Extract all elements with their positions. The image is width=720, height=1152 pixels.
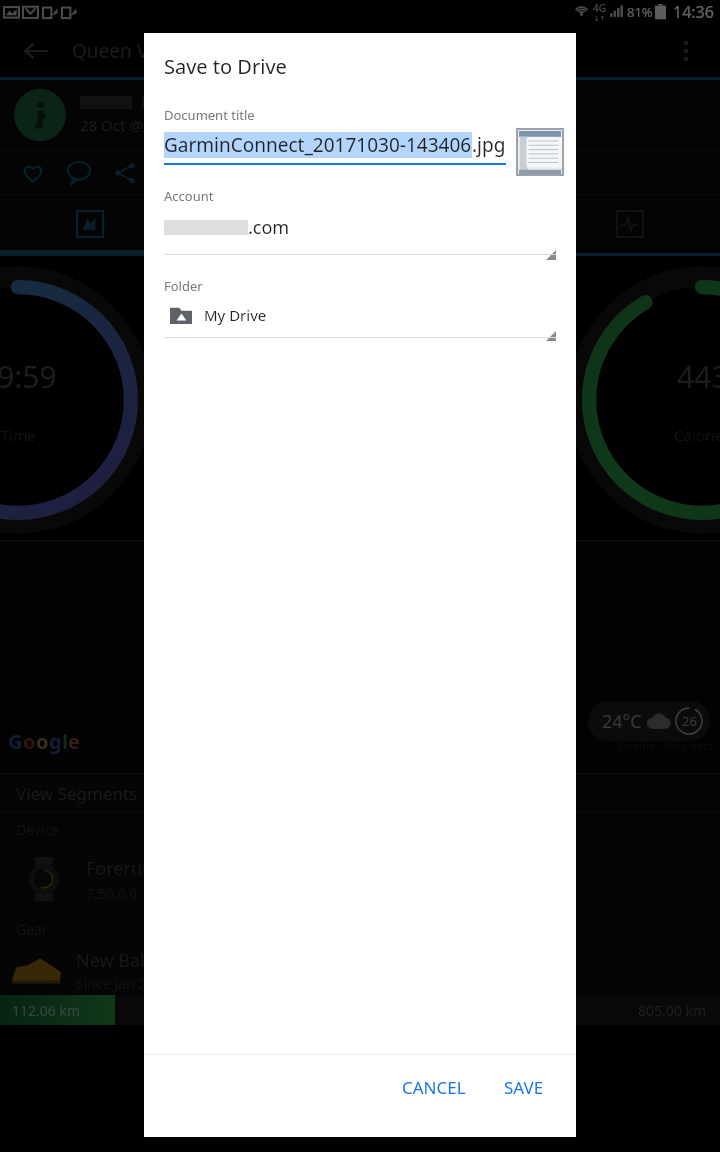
staticText: Save to Drive: [164, 53, 287, 80]
staticText: 81%: [627, 3, 653, 21]
staticText: e: [68, 728, 80, 755]
button[interactable]: More options: [664, 29, 708, 73]
button[interactable]: New Balance: [0, 945, 720, 995]
button[interactable]: Tab: [0, 195, 180, 253]
button[interactable]: Forerunner 935: [0, 845, 720, 913]
staticText: 24°C: [602, 709, 642, 734]
staticText: G: [8, 728, 23, 755]
staticText: 4G: [593, 1, 606, 15]
button[interactable]: View Segments: [0, 774, 720, 812]
staticText: 39:59: [0, 356, 57, 397]
staticText: Time: [1, 425, 36, 445]
button[interactable]: Tab: [180, 195, 360, 253]
staticText: 112.06 km: [12, 1001, 80, 1020]
staticText: CANCEL: [402, 1076, 466, 1099]
button[interactable]: Comment: [56, 151, 102, 194]
staticText: o: [36, 728, 49, 755]
staticText: g: [49, 728, 62, 755]
staticText: Account: [164, 187, 214, 205]
staticText: .com: [248, 215, 290, 240]
staticText: Document title: [164, 106, 255, 124]
button[interactable]: CANCEL: [390, 1068, 478, 1107]
button[interactable]: .com: [164, 215, 556, 240]
staticText: Since Jan 28, 2017: [76, 974, 194, 993]
button[interactable]: Like: [10, 151, 56, 194]
staticText: 443: [677, 356, 720, 397]
staticText: Queen Victoria: [72, 38, 204, 64]
button[interactable]: SAVE: [492, 1068, 556, 1107]
staticText: ↓↑: [594, 15, 606, 23]
staticText: Folder: [164, 277, 203, 295]
staticText: o: [23, 728, 36, 755]
staticText: Calories: [674, 425, 720, 445]
staticText: New Balance: [76, 948, 185, 973]
staticText: My Drive: [204, 305, 267, 325]
staticText: SAVE: [504, 1076, 544, 1099]
button[interactable]: Back: [16, 31, 56, 71]
button[interactable]: My Drive: [164, 305, 556, 325]
button[interactable]: Weather: [602, 706, 704, 736]
staticText: Forerunner 935: [86, 856, 218, 881]
staticText: 805.00 km: [638, 1001, 706, 1020]
staticText: 28 Oct @ 16:17: [80, 115, 186, 135]
staticText: View Segments: [16, 782, 138, 805]
staticText: 14:36: [673, 1, 714, 23]
staticText: Device: [16, 820, 60, 839]
staticText: Google - Map data: [618, 738, 714, 753]
button[interactable]: Tab: [540, 195, 720, 253]
staticText: GarminConnect_20171030-143406: [164, 132, 472, 158]
staticText: 26: [682, 712, 697, 730]
staticText: .jpg: [472, 132, 506, 158]
button[interactable]: Share: [102, 151, 148, 194]
staticText: l: [62, 728, 68, 755]
staticText: Gear: [16, 920, 48, 939]
button[interactable]: GarminConnect_20171030-143406: [164, 132, 506, 165]
staticText: 7.50.0.0: [86, 884, 138, 903]
